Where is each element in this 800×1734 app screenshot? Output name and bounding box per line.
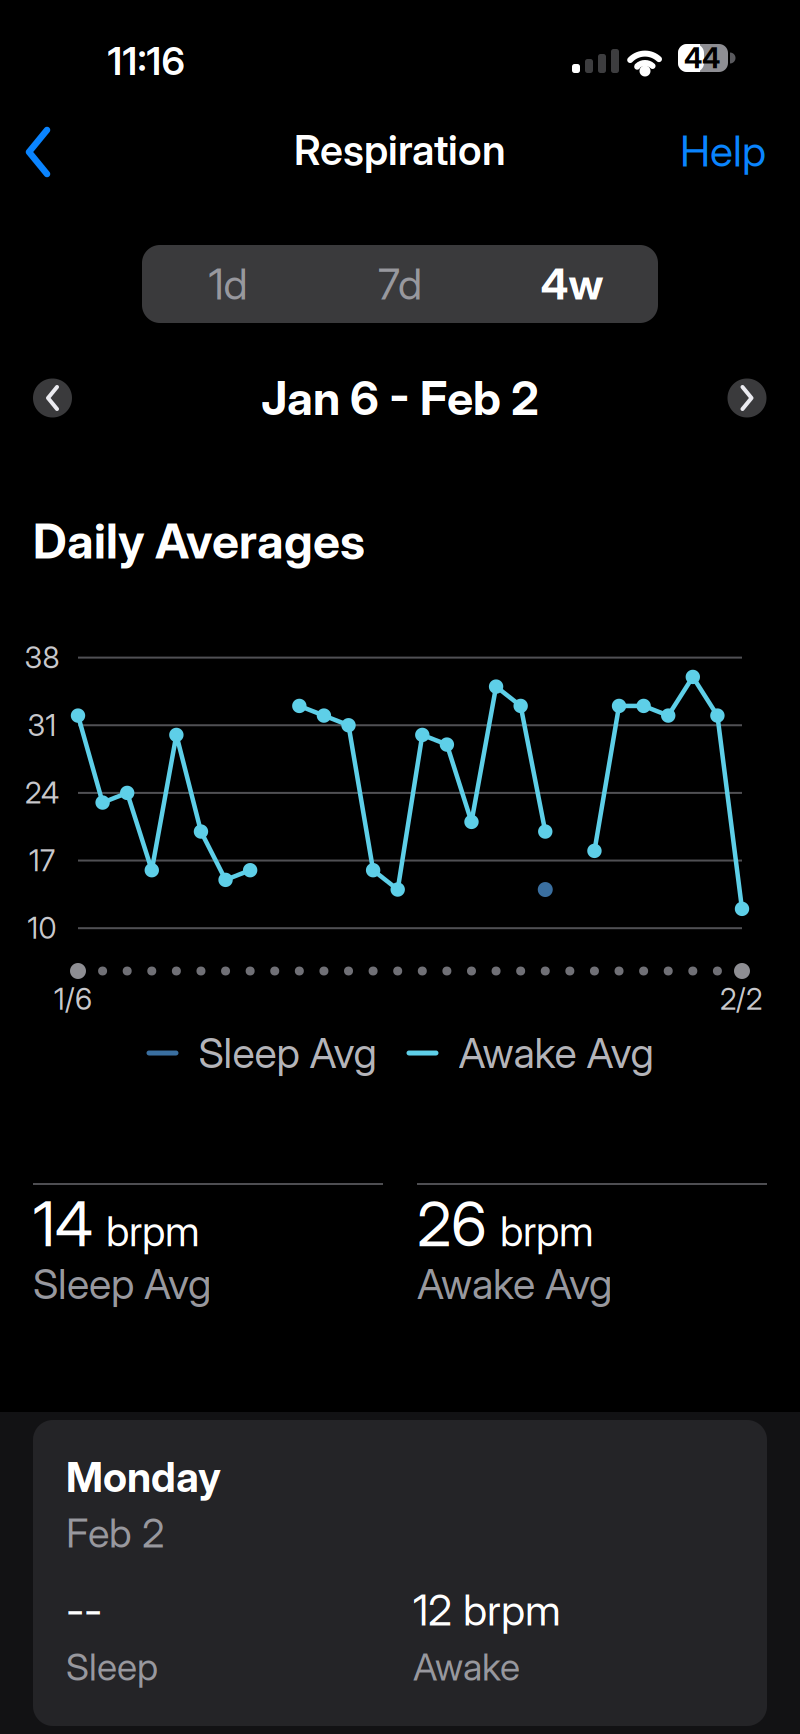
button[interactable]: 7d bbox=[314, 245, 486, 323]
staticText: Sleep bbox=[66, 1645, 158, 1689]
staticText: Daily Averages bbox=[33, 513, 365, 569]
staticText: brpm bbox=[500, 1207, 594, 1256]
button[interactable]: 1d bbox=[142, 245, 314, 323]
staticText: 24 bbox=[25, 776, 59, 810]
staticText: Sleep Avg bbox=[198, 1029, 376, 1077]
staticText: Sleep Avg bbox=[33, 1260, 211, 1308]
staticText: 31 bbox=[27, 708, 56, 742]
staticText: 17 bbox=[29, 843, 55, 878]
staticText: 38 bbox=[24, 640, 59, 675]
staticText: 14 bbox=[33, 1188, 93, 1260]
staticText: brpm bbox=[106, 1207, 200, 1256]
staticText: Help bbox=[680, 126, 766, 176]
staticText: 26 bbox=[417, 1188, 487, 1260]
staticText: 2/2 bbox=[720, 982, 762, 1016]
staticText: Monday bbox=[66, 1453, 221, 1501]
staticText: 1d bbox=[208, 259, 247, 309]
staticText: 11:16 bbox=[107, 38, 184, 84]
button[interactable]: 4w bbox=[486, 245, 658, 323]
staticText: Jan 6 - Feb 2 bbox=[261, 370, 539, 426]
staticText: 7d bbox=[378, 259, 422, 309]
staticText: 44 bbox=[684, 41, 720, 74]
button[interactable]: Previous period bbox=[33, 378, 72, 417]
staticText: Respiration bbox=[294, 126, 506, 174]
button[interactable]: Help bbox=[680, 126, 766, 176]
staticText: 10 bbox=[27, 911, 56, 945]
staticText: Feb 2 bbox=[66, 1509, 164, 1557]
staticText: 4w bbox=[540, 259, 603, 309]
staticText: Awake Avg bbox=[458, 1029, 653, 1077]
button[interactable]: Next period bbox=[727, 378, 766, 417]
staticText: Awake bbox=[413, 1645, 520, 1689]
button[interactable]: Back bbox=[8, 112, 68, 192]
staticText: 1/6 bbox=[54, 982, 92, 1016]
staticText: 12 brpm bbox=[413, 1585, 561, 1635]
staticText: -- bbox=[66, 1585, 102, 1635]
staticText: Awake Avg bbox=[417, 1260, 612, 1308]
